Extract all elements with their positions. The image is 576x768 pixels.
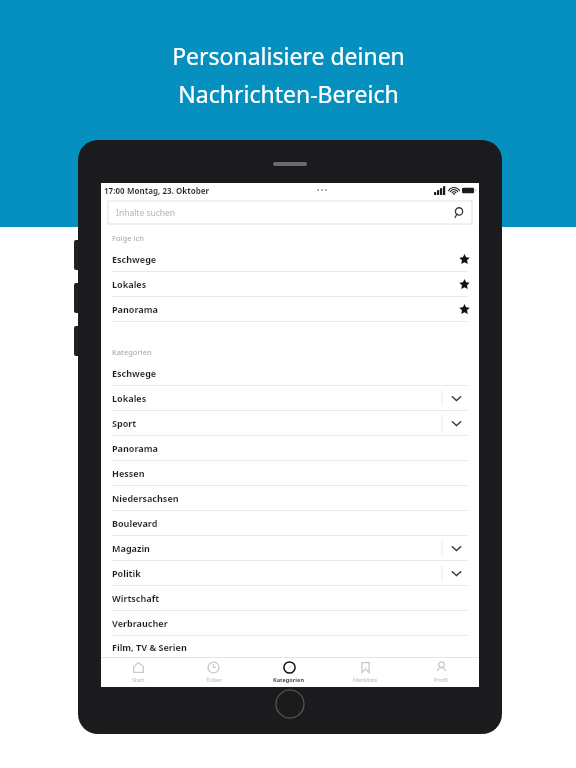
staticText: Lokales <box>112 392 147 404</box>
staticText: Inhalte suchen <box>116 207 176 219</box>
button[interactable]: Lokales <box>101 272 479 296</box>
staticText: Kategorien <box>112 347 152 357</box>
staticText: Sport <box>112 417 137 429</box>
staticText: Profil <box>434 676 448 684</box>
staticText: Start <box>132 676 145 684</box>
staticText: Personalisiere deinen <box>172 40 405 71</box>
staticText: 17:00 <box>104 185 127 196</box>
button[interactable]: Start <box>101 658 176 687</box>
other: Suchen <box>454 207 465 218</box>
staticText: Montag, 23. Oktober <box>127 185 210 196</box>
staticText: Politik <box>112 567 141 579</box>
staticText: Verbraucher <box>112 617 168 629</box>
staticText: Hessen <box>112 467 145 479</box>
other: Folgen <box>459 304 470 315</box>
other: Aufklappen <box>451 420 462 427</box>
staticText: Lokales <box>112 278 147 290</box>
staticText: Kategorien <box>273 676 305 684</box>
button[interactable]: Eschwege <box>101 361 479 385</box>
button[interactable]: Panorama <box>101 436 479 460</box>
button[interactable]: Hessen <box>101 461 479 485</box>
staticText: Magazin <box>112 542 150 554</box>
other: Folgen <box>459 254 470 265</box>
button[interactable]: Magazin <box>101 536 479 560</box>
button[interactable]: Niedersachsen <box>101 486 479 510</box>
staticText: Film, TV & Serien <box>112 641 187 653</box>
other: Folgen <box>459 279 470 290</box>
staticText: Nachrichten-Bereich <box>178 78 399 109</box>
staticText: Merkliste <box>353 676 378 684</box>
staticText: Wirtschaft <box>112 592 160 604</box>
button[interactable]: Kategorien <box>251 658 327 687</box>
button[interactable]: Eschwege <box>101 247 479 271</box>
staticText: Folge ich <box>112 233 144 243</box>
staticText: Panorama <box>112 442 158 454</box>
staticText: Boulevard <box>112 517 158 529</box>
button[interactable]: Panorama <box>101 297 479 321</box>
staticText: Eschwege <box>112 367 157 379</box>
staticText: Panorama <box>112 303 158 315</box>
staticText: Niedersachsen <box>112 492 179 504</box>
button[interactable]: Politik <box>101 561 479 585</box>
button[interactable]: Profil <box>403 658 479 687</box>
button[interactable]: Sport <box>101 411 479 435</box>
button[interactable]: Boulevard <box>101 511 479 535</box>
button[interactable]: Lokales <box>101 386 479 410</box>
other: Aufklappen <box>451 395 462 402</box>
button[interactable]: Merkliste <box>327 658 403 687</box>
other: Aufklappen <box>451 570 462 577</box>
button[interactable]: Film, TV & Serien <box>101 636 479 657</box>
button[interactable]: Wirtschaft <box>101 586 479 610</box>
button[interactable]: Inhalte suchen <box>108 201 472 224</box>
button[interactable]: Verbraucher <box>101 611 479 635</box>
staticText: Ticker <box>206 676 222 684</box>
button[interactable]: Ticker <box>176 658 251 687</box>
staticText: Eschwege <box>112 253 157 265</box>
other: Aufklappen <box>451 545 462 552</box>
